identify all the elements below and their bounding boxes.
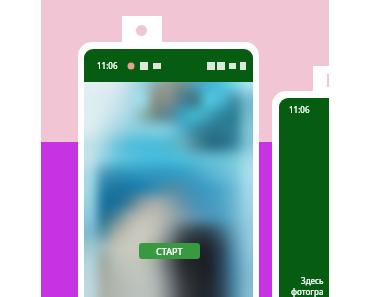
button[interactable]: СТАРТ bbox=[139, 243, 200, 259]
staticText: СТАРТ bbox=[156, 245, 183, 257]
staticText: фотогра bbox=[291, 286, 324, 297]
staticText: Здесь bbox=[301, 275, 324, 286]
staticText: 11:06 bbox=[289, 104, 310, 115]
staticText: 11:06 bbox=[97, 60, 118, 71]
